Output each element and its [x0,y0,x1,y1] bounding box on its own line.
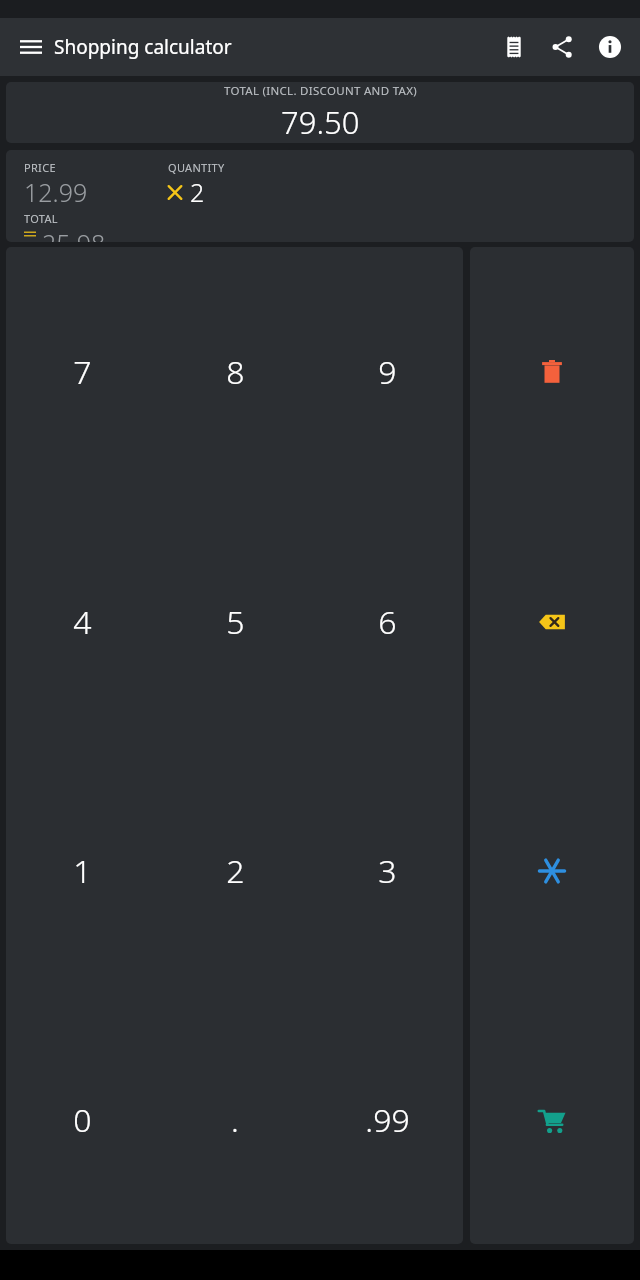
staticText: QUANTITY [168,160,225,175]
button[interactable]: Receipt [490,23,538,71]
button[interactable]: 6 [311,497,463,746]
button[interactable]: Menu [10,26,52,68]
button[interactable]: Clear [470,247,634,497]
button[interactable]: Add to cart [470,995,634,1244]
button[interactable]: 1 [6,746,159,995]
staticText: TOTAL (INCL. DISCOUNT AND TAX) [224,83,417,99]
button[interactable]: Share [538,23,586,71]
staticText: 8 [226,350,245,394]
button[interactable]: 8 [159,247,311,497]
button[interactable]: 5 [159,497,311,746]
button[interactable]: 0 [6,995,159,1244]
staticText: 2 [226,849,245,893]
button[interactable]: 3 [311,746,463,995]
staticText: .99 [365,1098,410,1142]
staticText: 9 [378,350,397,394]
button[interactable]: PRICE [6,150,634,242]
staticText: 12.99 [24,175,88,209]
staticText: TOTAL [24,211,58,226]
button[interactable]: .99 [311,995,463,1244]
staticText: 3 [378,849,397,893]
staticText: 7 [73,350,92,394]
staticText: Shopping calculator [54,34,232,60]
staticText: 79.50 [281,101,360,143]
staticText: 2 [190,175,205,209]
button[interactable]: 9 [311,247,463,497]
staticText: 1 [73,849,92,893]
staticText: 0 [73,1098,92,1142]
staticText: 6 [378,600,397,644]
staticText: 25.98 [42,226,106,242]
button[interactable]: 7 [6,247,159,497]
button[interactable]: 4 [6,497,159,746]
button[interactable]: Backspace [470,497,634,746]
staticText: 4 [73,600,92,644]
staticText: PRICE [24,160,56,175]
button[interactable]: 2 [159,746,311,995]
staticText: . [231,1098,239,1142]
button[interactable]: Multiply [470,746,634,995]
button[interactable]: Info [586,23,634,71]
staticText: 5 [226,600,245,644]
button[interactable]: TOTAL (INCL. DISCOUNT AND TAX) [6,82,634,143]
